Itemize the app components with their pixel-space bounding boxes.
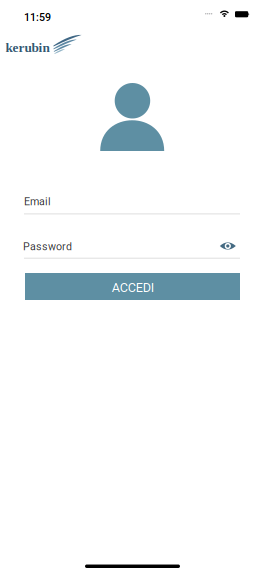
staticText: kerubin bbox=[6, 40, 50, 55]
staticText: Email bbox=[24, 195, 51, 208]
staticText: ACCEDI bbox=[112, 280, 154, 295]
staticText: 11:59 bbox=[24, 11, 51, 23]
button[interactable]: Show password bbox=[216, 234, 240, 258]
button[interactable]: ACCEDI bbox=[25, 273, 240, 300]
staticText: Password bbox=[23, 240, 72, 253]
